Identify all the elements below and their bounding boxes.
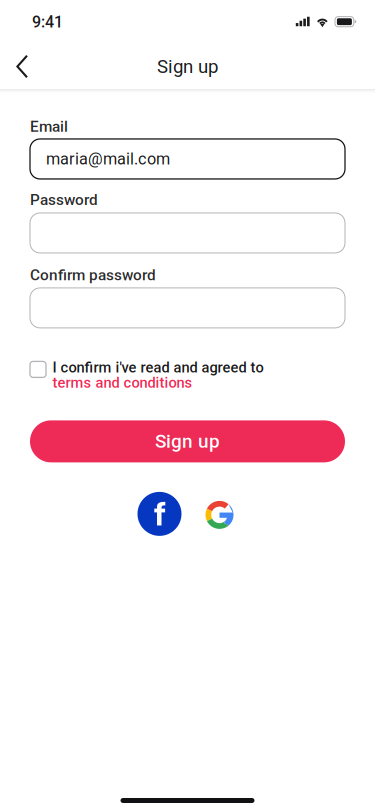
staticText: Sign up (155, 430, 220, 452)
staticText: Email (30, 118, 68, 136)
button[interactable]: Back (0, 44, 46, 88)
button[interactable]: Sign up with Google (205, 499, 233, 529)
staticText: Confirm password (30, 266, 156, 284)
staticText: I confirm i've read and agreed to (52, 359, 263, 376)
staticText: maria@mail.com (46, 149, 170, 168)
button[interactable]: Sign up (30, 420, 345, 462)
staticText: Password (30, 191, 98, 209)
staticText: terms and conditions (52, 374, 192, 391)
staticText: 9:41 (32, 13, 63, 31)
button[interactable]: Confirm terms and conditions (30, 359, 52, 379)
staticText: Sign up (157, 56, 218, 77)
button[interactable]: Sign up with Facebook (137, 492, 181, 536)
button[interactable]: terms and conditions (52, 374, 192, 391)
